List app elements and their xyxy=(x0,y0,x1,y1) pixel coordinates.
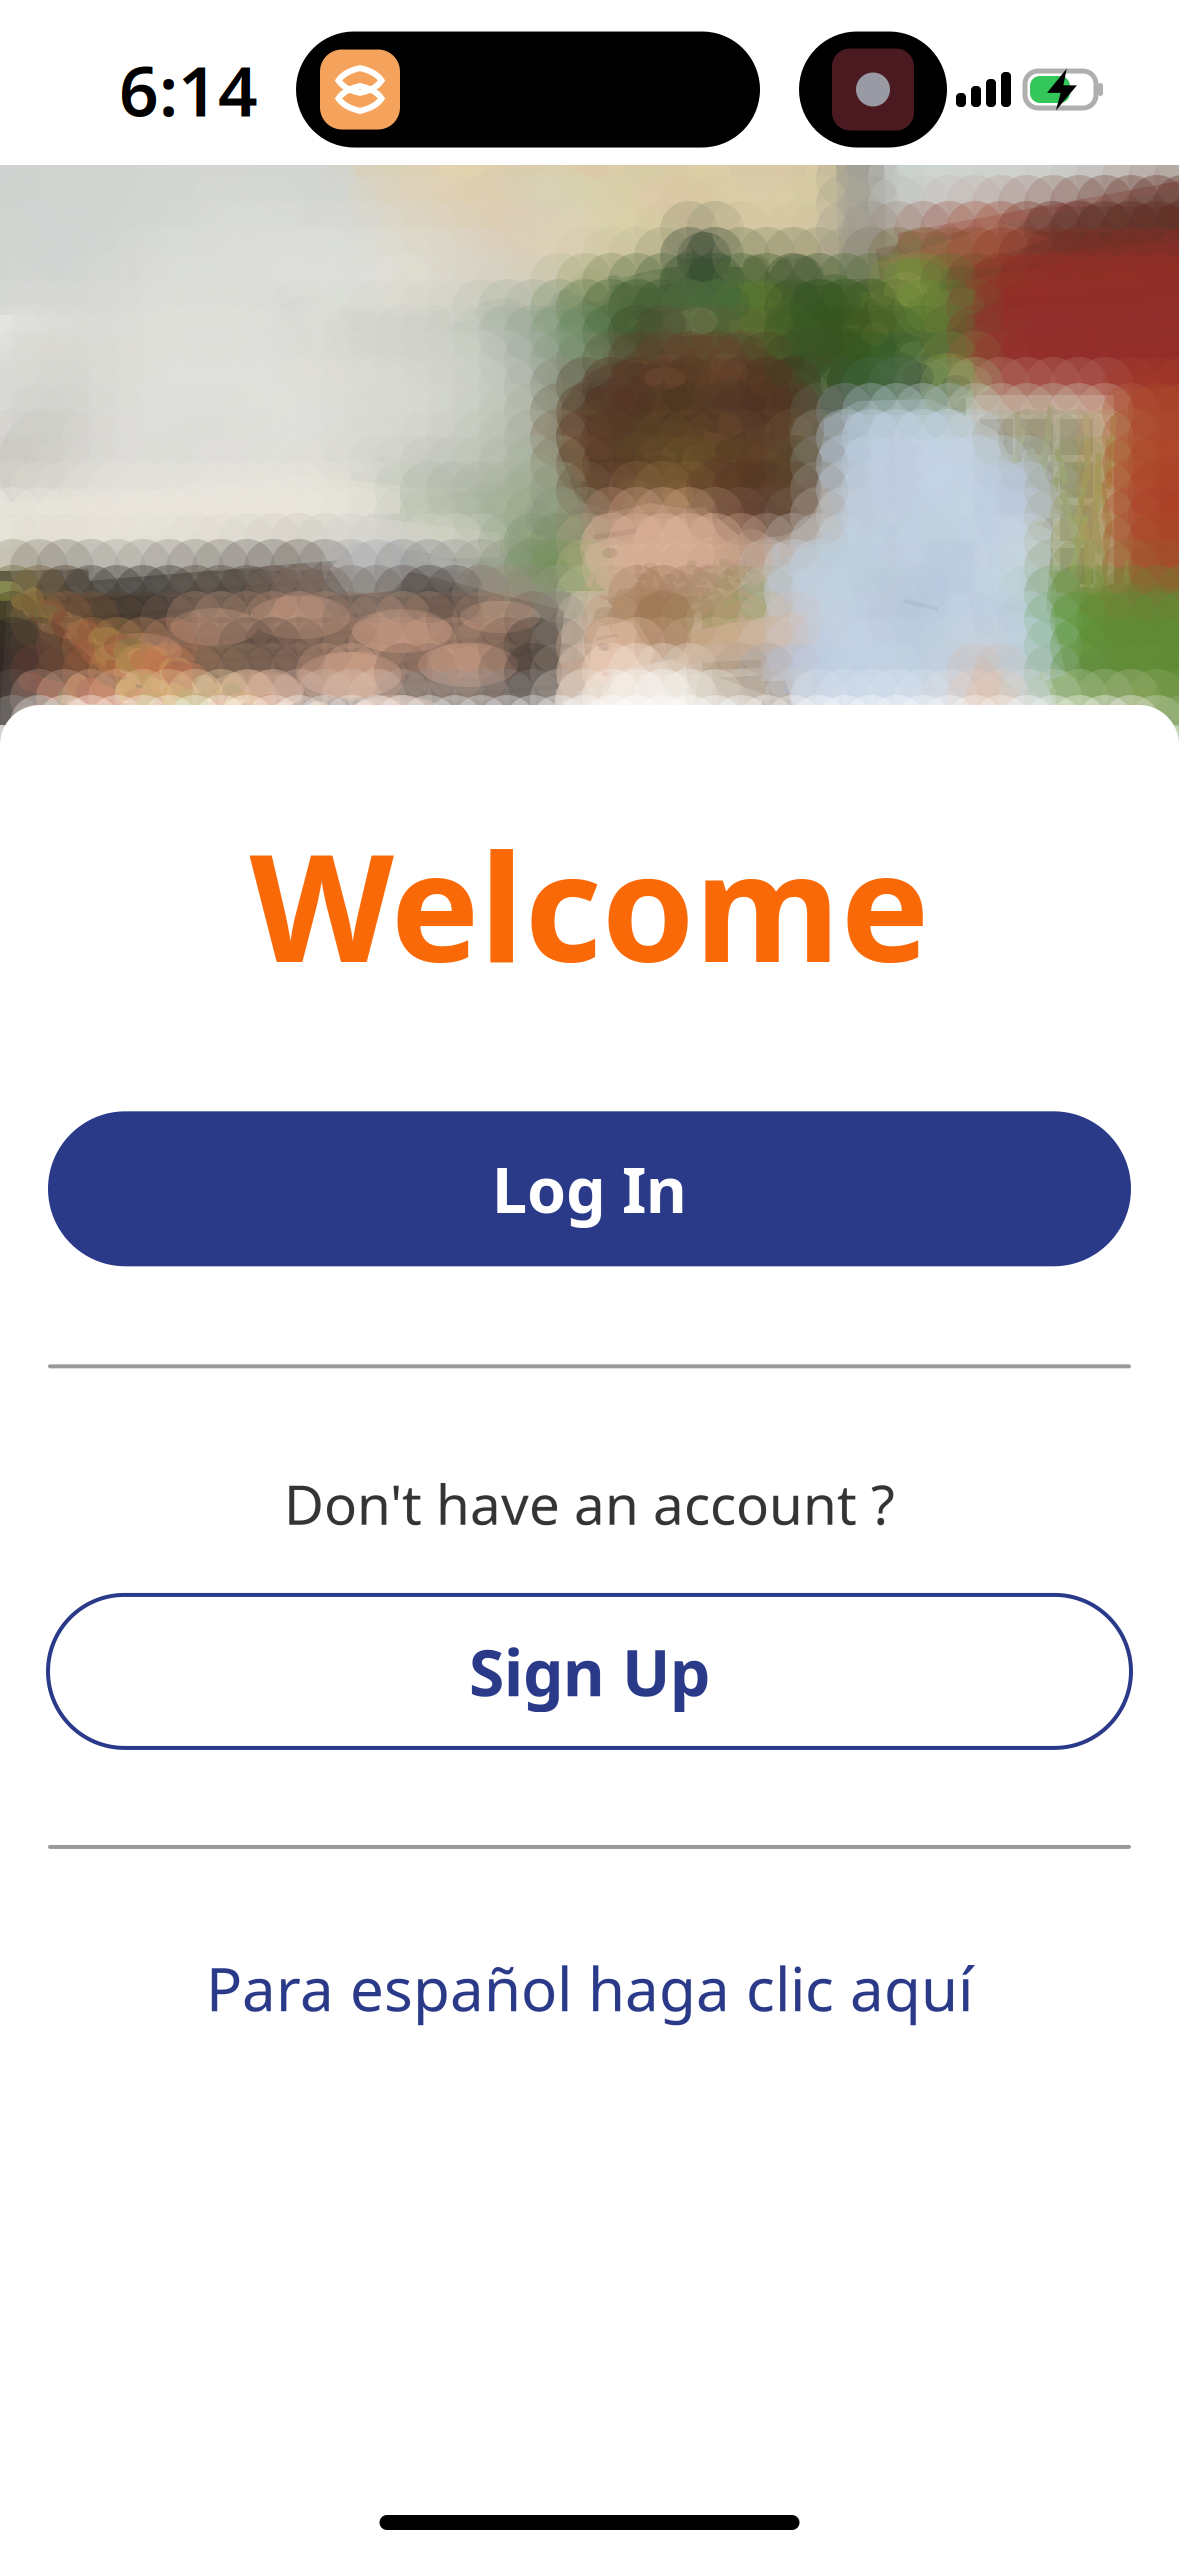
staticText: Sign Up xyxy=(469,1629,710,1714)
button[interactable]: Log In xyxy=(48,1111,1131,1266)
staticText: 6:14 xyxy=(119,43,258,136)
staticText: Para español haga clic aquí xyxy=(206,1948,973,2028)
staticText: Don't have an account ? xyxy=(284,1467,895,1540)
button[interactable]: Para español haga clic aquí xyxy=(48,1943,1131,2033)
staticText: Welcome xyxy=(249,805,929,1003)
button[interactable]: Sign Up xyxy=(48,1595,1131,1748)
staticText: Log In xyxy=(492,1147,687,1230)
